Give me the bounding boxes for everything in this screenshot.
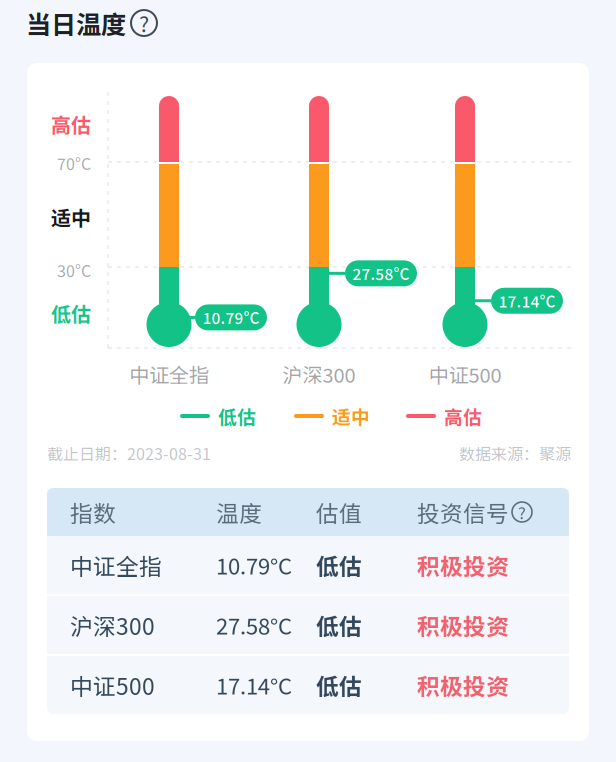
staticText: 30°C: [57, 258, 91, 282]
staticText: 沪深300: [70, 609, 155, 641]
staticText: 温度: [216, 496, 262, 528]
staticText: 投资信号: [417, 496, 509, 528]
staticText: 积极投资: [417, 669, 509, 701]
staticText: 高估: [444, 402, 482, 429]
staticText: 中证全指: [129, 359, 209, 388]
staticText: 17.14°C: [498, 290, 555, 312]
staticText: 27.58°C: [216, 609, 292, 641]
staticText: 截止日期：2023-08-31: [47, 441, 211, 465]
staticText: 低估: [316, 669, 362, 701]
staticText: 高估: [51, 109, 91, 138]
staticText: 适中: [51, 202, 91, 231]
staticText: 低估: [316, 549, 362, 581]
staticText: 70°C: [57, 151, 91, 175]
staticText: 中证500: [70, 669, 155, 701]
staticText: 数据来源：聚源: [459, 441, 571, 465]
button[interactable]: 当日温度说明: [128, 7, 160, 39]
staticText: 中证500: [428, 359, 501, 388]
staticText: 低估: [218, 402, 256, 429]
staticText: 10.79°C: [202, 306, 259, 328]
staticText: 10.79°C: [216, 549, 292, 581]
staticText: 中证全指: [70, 549, 162, 581]
staticText: 估值: [316, 496, 362, 528]
staticText: 17.14°C: [216, 669, 292, 701]
staticText: 沪深300: [282, 359, 355, 388]
button[interactable]: 投资信号说明: [512, 502, 532, 522]
staticText: 适中: [332, 402, 370, 429]
staticText: ?: [518, 500, 526, 524]
staticText: 指数: [70, 496, 116, 528]
staticText: ?: [139, 7, 149, 38]
staticText: 积极投资: [417, 549, 509, 581]
staticText: 当日温度: [26, 5, 126, 41]
staticText: 低估: [316, 609, 362, 641]
staticText: 27.58°C: [352, 262, 409, 284]
staticText: 低估: [51, 298, 91, 327]
staticText: 积极投资: [417, 609, 509, 641]
